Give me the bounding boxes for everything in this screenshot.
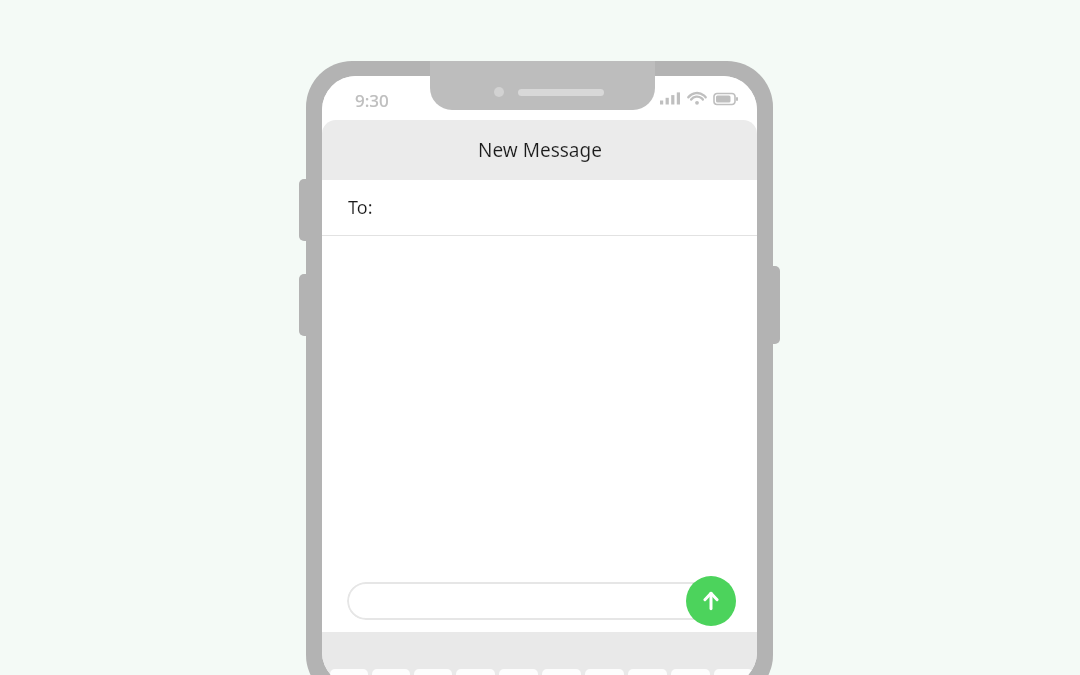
button[interactable] xyxy=(499,669,538,675)
button[interactable] xyxy=(456,669,495,675)
button[interactable] xyxy=(671,669,710,675)
button[interactable] xyxy=(414,669,452,675)
button[interactable] xyxy=(347,582,732,620)
staticText: To: xyxy=(348,195,373,220)
button[interactable] xyxy=(585,669,624,675)
button[interactable] xyxy=(330,669,368,675)
button[interactable] xyxy=(628,669,667,675)
staticText: New Message xyxy=(478,137,602,163)
button[interactable] xyxy=(542,669,581,675)
button[interactable] xyxy=(372,669,410,675)
button[interactable]: To: xyxy=(322,180,757,235)
button[interactable]: Send xyxy=(686,576,736,626)
staticText: 9:30 xyxy=(355,89,389,112)
button[interactable] xyxy=(714,669,753,675)
